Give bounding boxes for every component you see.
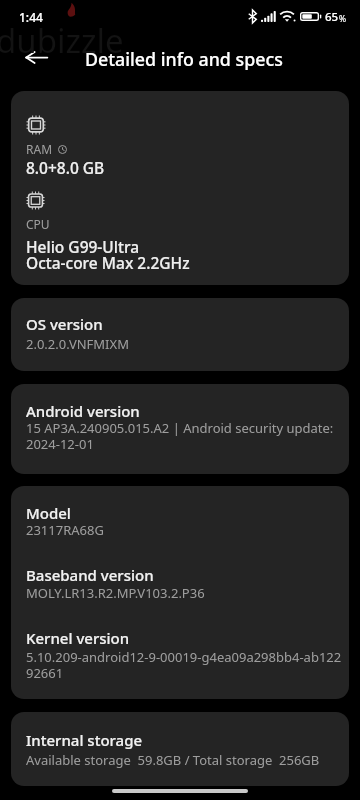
button[interactable]: OS version xyxy=(11,298,349,371)
staticText: CPU xyxy=(26,216,50,232)
staticText: 65 xyxy=(325,9,339,25)
staticText: 15 AP3A.240905.015.A2 | Android security… xyxy=(26,419,334,453)
staticText: 23117RA68G xyxy=(26,521,104,539)
staticText: RAM xyxy=(26,141,53,157)
button[interactable]: Android version xyxy=(11,384,349,474)
staticText: OS version xyxy=(26,314,103,334)
button[interactable]: Back xyxy=(16,37,57,78)
staticText: 2.0.2.0.VNFMIXM xyxy=(26,335,129,353)
staticText: dubizzle xyxy=(0,18,124,63)
staticText: 8.0+8.0 GB xyxy=(26,157,105,178)
staticText: Android version xyxy=(26,401,140,421)
staticText: Model xyxy=(26,503,71,523)
button[interactable]: Internal storage xyxy=(11,712,349,786)
staticText: 1:44 xyxy=(19,9,43,25)
staticText: Detailed info and specs xyxy=(85,47,283,71)
staticText: % xyxy=(339,13,347,25)
staticText: Available storage 59.8GB / Total storage… xyxy=(26,751,320,769)
staticText: Baseband version xyxy=(26,565,154,585)
button[interactable]: RAM xyxy=(11,91,349,285)
staticText: Kernel version xyxy=(26,628,130,648)
staticText: MOLY.LR13.R2.MP.V103.2.P36 xyxy=(26,584,205,602)
staticText: 5.10.209-android12-9-00019-g4ea09a298bb4… xyxy=(26,648,341,682)
staticText: Internal storage xyxy=(26,730,143,750)
button[interactable]: Model xyxy=(11,486,349,699)
staticText: Helio G99-Ultra Octa-core Max 2.2GHz xyxy=(26,236,190,273)
